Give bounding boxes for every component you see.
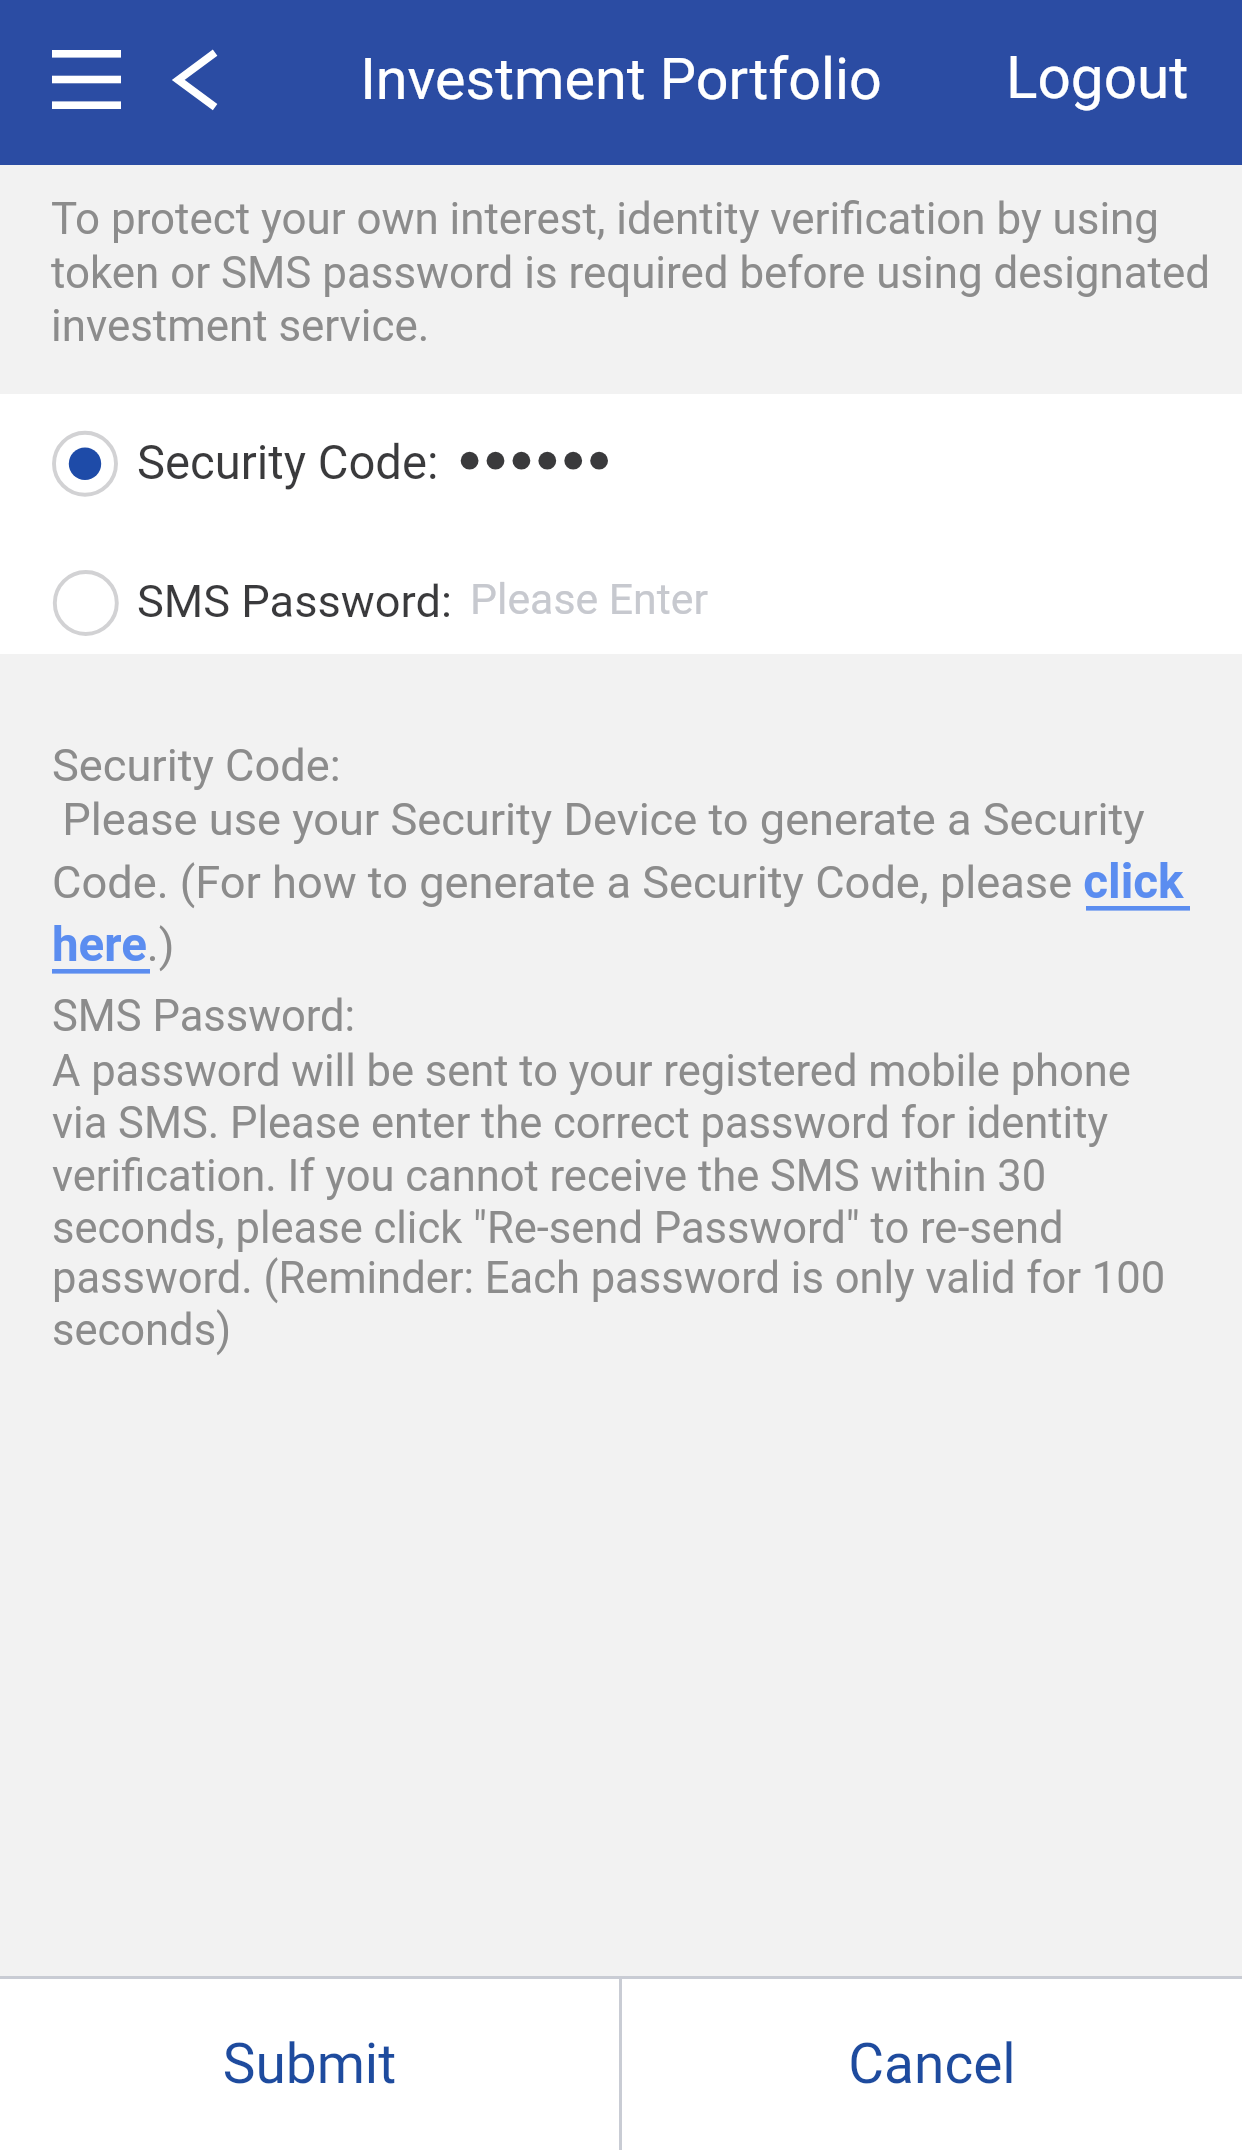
staticText: token or SMS password is required before… [51, 247, 1211, 298]
staticText: Submit [0, 2032, 619, 2096]
staticText: verification. If you cannot receive the … [52, 1151, 1047, 1202]
staticText: Logout [1006, 44, 1189, 113]
staticText: Investment Portfolio [0, 46, 1242, 113]
button[interactable]: Menu [22, 20, 151, 139]
staticText: Cancel [622, 2032, 1242, 2096]
staticText: To protect your own interest, identity v… [51, 193, 1159, 244]
button[interactable]: click here [1082, 856, 1192, 914]
staticText: here.) [52, 917, 175, 973]
staticText: Security Code: [137, 435, 439, 490]
staticText: Please Enter [470, 574, 708, 624]
staticText: investment service. [51, 300, 430, 351]
staticText: SMS Password: [137, 575, 452, 628]
staticText: seconds) [52, 1305, 232, 1356]
staticText: seconds, please click "Re-send Password"… [52, 1203, 1064, 1254]
button[interactable] [0, 526, 1242, 654]
button[interactable]: Logout [985, 18, 1215, 142]
button[interactable]: Cancel [622, 1979, 1242, 2150]
staticText: Security Code: [52, 739, 341, 792]
staticText: A password will be sent to your register… [52, 1046, 1131, 1097]
button[interactable]: Back [160, 20, 240, 139]
staticText: Code. (For how to generate a Security Co… [52, 854, 1184, 910]
staticText: Please use your Security Device to gener… [51, 793, 1145, 846]
staticText: via SMS. Please enter the correct passwo… [52, 1098, 1108, 1149]
button[interactable]: Submit [0, 1979, 619, 2150]
button[interactable]: click here [50, 919, 152, 977]
staticText: SMS Password: [52, 991, 356, 1042]
button[interactable] [0, 394, 1242, 526]
staticText: password. (Reminder: Each password is on… [52, 1253, 1166, 1304]
